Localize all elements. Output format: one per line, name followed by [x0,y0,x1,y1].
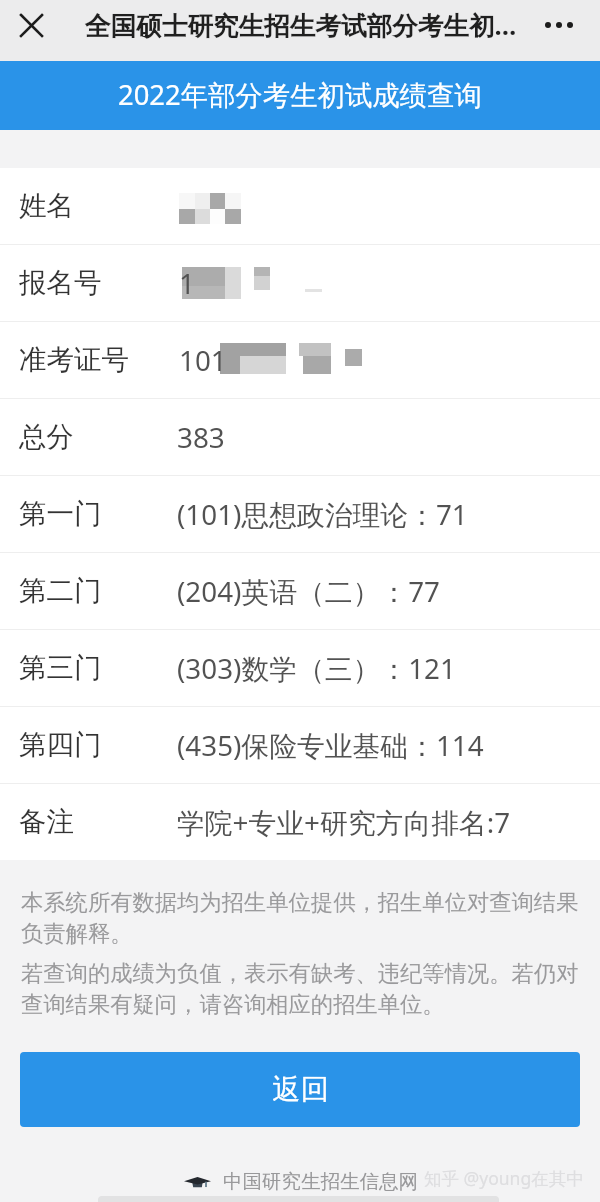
staticText: (303)数学（三）：121 [177,649,456,687]
staticText: 第二门 [19,574,177,609]
staticText: 学院+专业+研究方向排名:7 [177,803,511,841]
staticText: 中国研究生招生信息网 [223,1169,418,1194]
staticText: 总分 [19,420,177,455]
staticText: 备注 [19,805,177,840]
staticText: 若查询的成绩为负值，表示有缺考、违纪等情况。若仍对查询结果有疑问，请咨询相应的招… [21,960,588,1019]
staticText: 383 [177,418,225,456]
staticText: 1 [179,264,195,302]
button[interactable]: Close [0,0,62,50]
button[interactable]: 第三门 [0,630,600,706]
staticText: (204)英语（二）：77 [177,572,440,610]
staticText: 第四门 [19,728,177,763]
staticText: 第三门 [19,651,177,686]
button[interactable]: 第二门 [0,553,600,629]
button[interactable]: More options [530,0,588,50]
button[interactable]: 总分 [0,399,600,475]
staticText: 第一门 [19,497,177,532]
staticText: (435)保险专业基础：114 [177,726,484,764]
button[interactable]: 第四门 [0,707,600,783]
staticText: 姓名 [19,189,177,224]
staticText: 知乎 @young在其中 [424,1166,600,1190]
button[interactable]: 第一门 [0,476,600,552]
staticText: 2022年部分考生初试成绩查询 [118,76,482,113]
staticText: 101 [179,341,227,379]
button[interactable]: 备注 [0,784,600,860]
button[interactable]: 报名号 [0,245,600,321]
button[interactable]: 准考证号 [0,322,600,398]
staticText: (101)思想政治理论：71 [177,495,468,533]
staticText: 全国硕士研究生招生考试部分考生初… [85,8,517,43]
button[interactable]: 返回 [20,1052,580,1127]
staticText: 报名号 [19,266,177,301]
staticText: 本系统所有数据均为招生单位提供，招生单位对查询结果负责解释。 [21,889,588,948]
button[interactable]: 姓名 [0,168,600,244]
staticText: 准考证号 [19,343,177,378]
staticText: 返回 [272,1072,329,1108]
